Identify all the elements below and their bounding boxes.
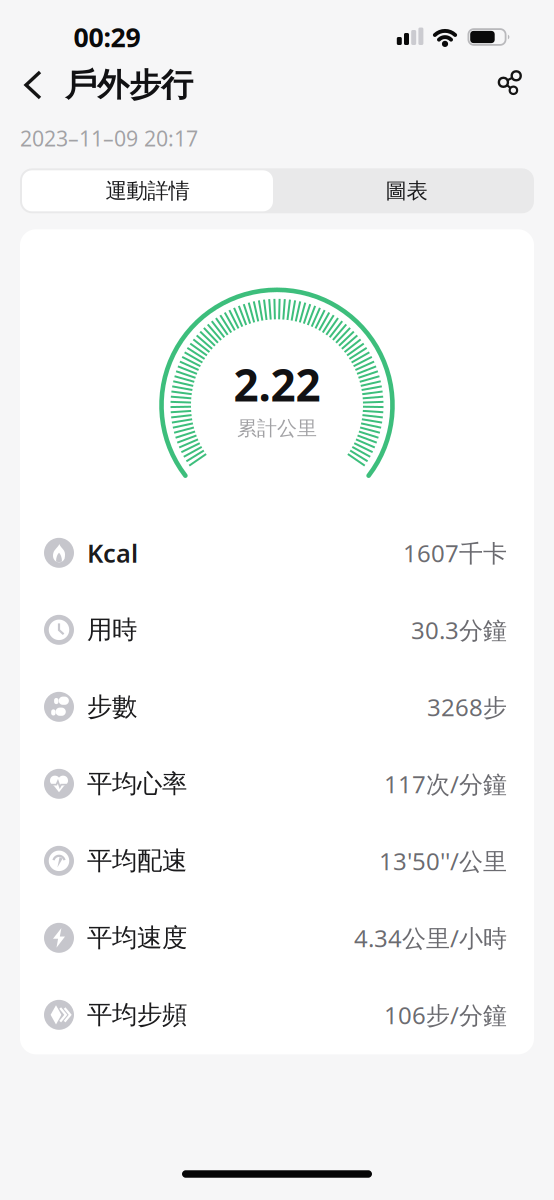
staticText: 4.34公里/小時 [354, 922, 507, 954]
button[interactable]: Share [488, 65, 532, 109]
button[interactable]: 圖表 [281, 170, 532, 211]
staticText: 平均速度 [87, 922, 187, 953]
button[interactable]: 運動詳情 [22, 170, 273, 211]
staticText: 30.3分鐘 [411, 614, 507, 646]
staticText: Kcal [87, 536, 138, 570]
staticText: 13'50''/公里 [379, 845, 507, 877]
staticText: 2023–11–09 20:17 [20, 124, 198, 152]
staticText: 106步/分鐘 [384, 999, 507, 1031]
staticText: 運動詳情 [105, 178, 189, 204]
staticText: 2.22 [233, 355, 320, 413]
staticText: 平均步頻 [87, 999, 187, 1030]
staticText: 圖表 [385, 178, 427, 204]
staticText: 平均配速 [87, 845, 187, 876]
staticText: 用時 [87, 614, 137, 645]
staticText: 00:29 [73, 19, 140, 55]
staticText: 1607千卡 [403, 537, 507, 569]
staticText: 步數 [87, 691, 137, 722]
staticText: 平均心率 [87, 768, 187, 799]
button[interactable]: Back [18, 67, 48, 107]
staticText: 117次/分鐘 [384, 768, 507, 800]
staticText: 3268步 [427, 691, 507, 723]
staticText: 戶外步行 [65, 65, 193, 105]
staticText: 累計公里 [237, 416, 317, 441]
